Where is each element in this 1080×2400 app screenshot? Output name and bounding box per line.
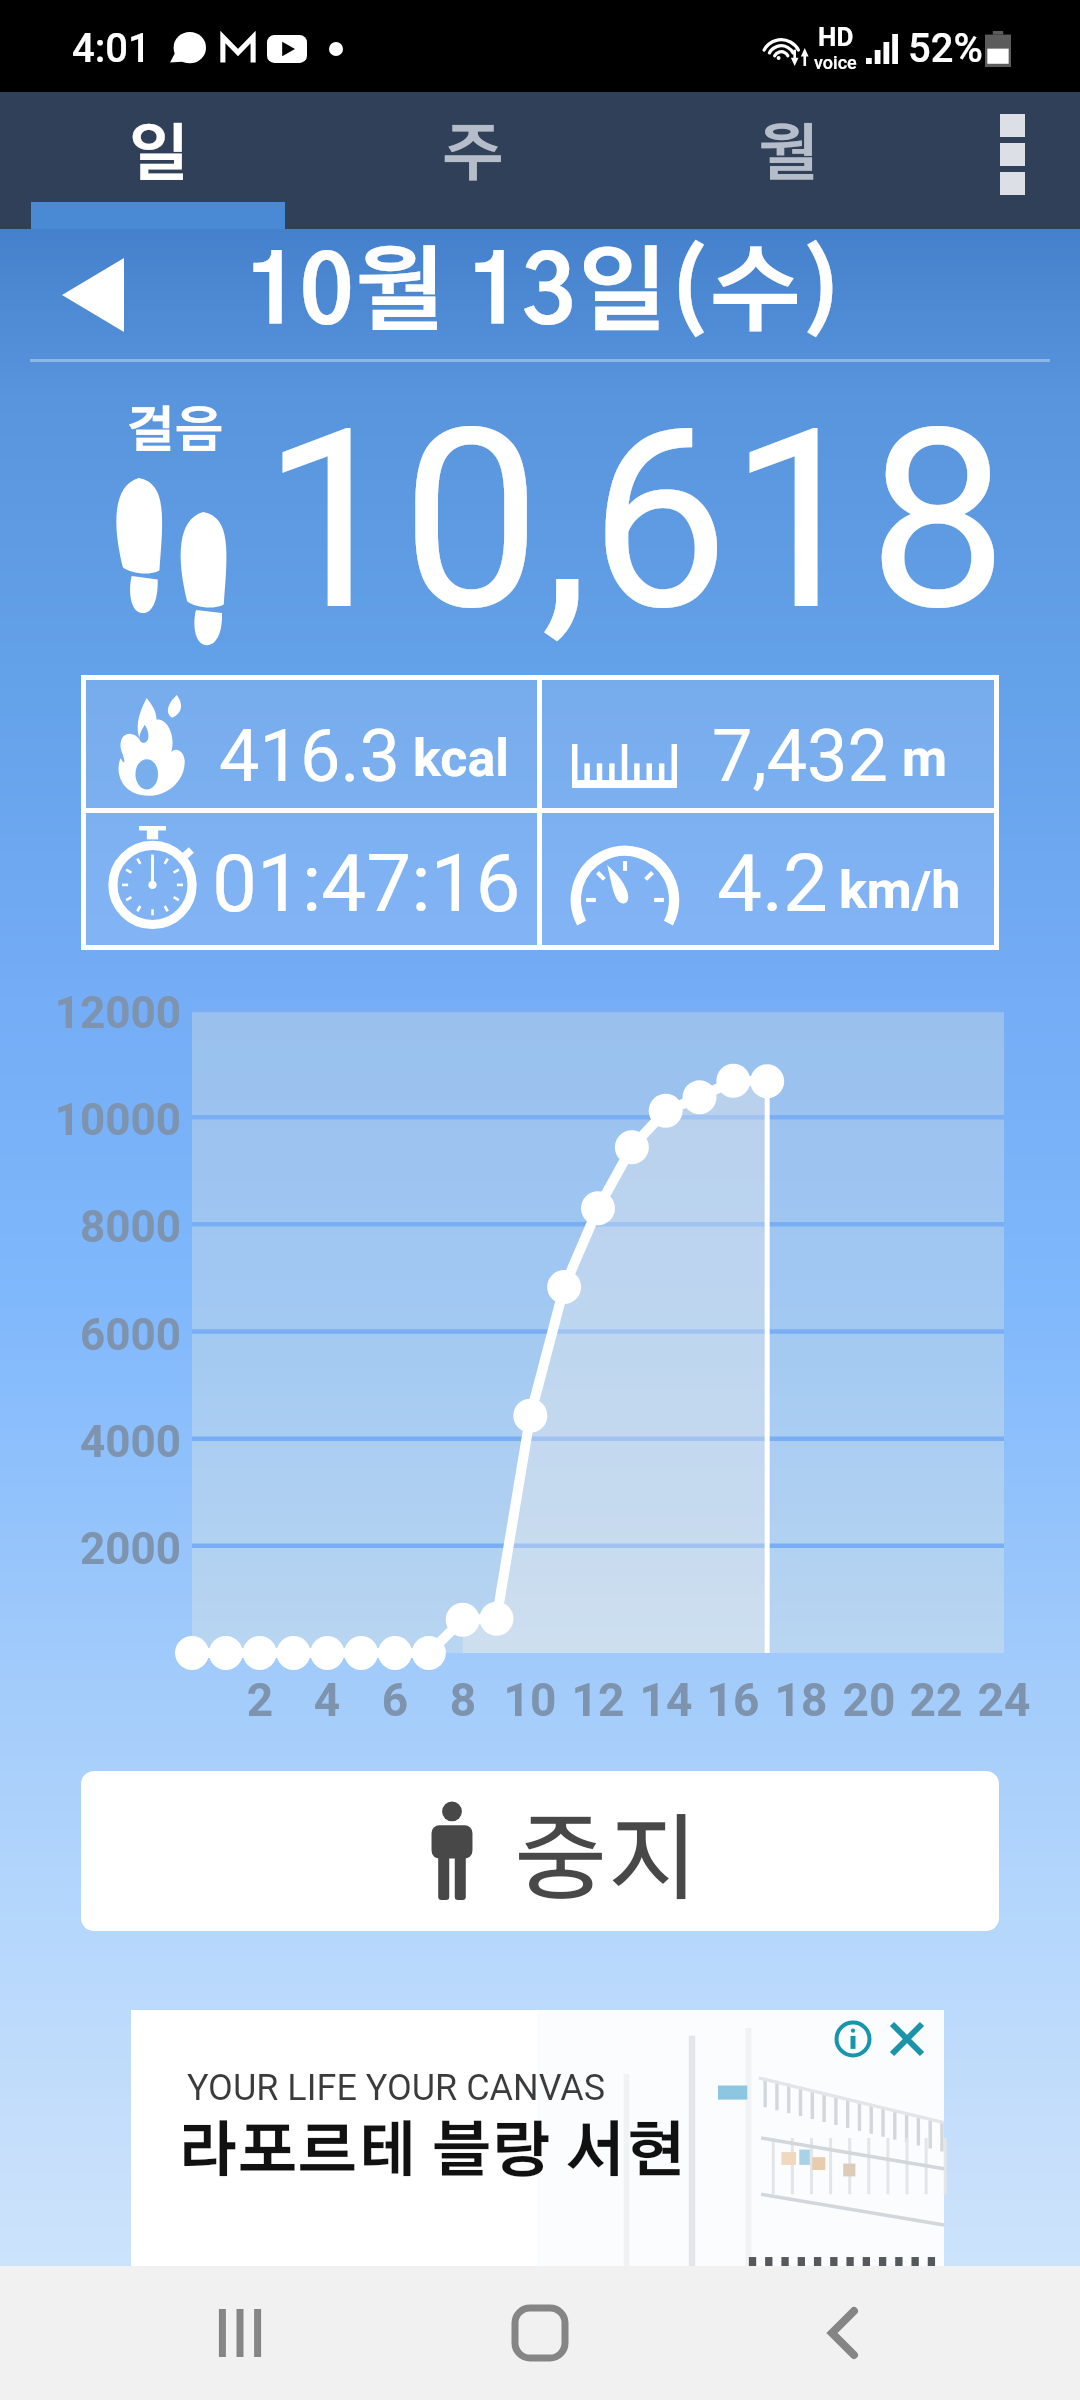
staticText: 12000 [0, 987, 181, 1039]
staticText: YOUR LIFE YOUR CANVAS [187, 2067, 606, 2109]
button[interactable]: 7,432 [542, 680, 994, 808]
staticText: 일 [127, 126, 189, 188]
staticText: 18 [761, 1673, 841, 1727]
staticText: 4000 [0, 1416, 181, 1468]
staticText: 걸음 [126, 408, 224, 457]
button[interactable]: More options [945, 92, 1080, 229]
staticText: 22 [896, 1673, 976, 1727]
staticText: km/h [839, 860, 961, 921]
button[interactable]: Close ad [888, 2020, 926, 2058]
staticText: 416.3 [219, 714, 400, 798]
staticText: 10월 13일(수) [5, 250, 1080, 342]
button[interactable]: Home [450, 2266, 630, 2400]
staticText: 8000 [0, 1201, 181, 1253]
staticText: 2 [220, 1673, 300, 1727]
staticText: m [902, 728, 948, 789]
button[interactable]: 중지 [81, 1771, 999, 1931]
button[interactable]: 주 [315, 92, 630, 229]
staticText: 라포르테 블랑 서현 [178, 2123, 686, 2183]
staticText: 16 [693, 1673, 773, 1727]
staticText: 월 [757, 126, 819, 188]
staticText: 4.2 [717, 837, 829, 931]
staticText: 14 [626, 1673, 706, 1727]
staticText: 7,432 [712, 714, 889, 798]
staticText: 20 [829, 1673, 909, 1727]
staticText: 주 [442, 126, 504, 188]
staticText: 10 [490, 1673, 570, 1727]
button[interactable]: YOUR LIFE YOUR CANVAS [131, 2010, 944, 2266]
button[interactable]: Ad info [834, 2020, 872, 2058]
staticText: 2000 [0, 1523, 181, 1575]
staticText: 12 [558, 1673, 638, 1727]
staticText: 01:47:16 [212, 837, 521, 931]
staticText: 8 [423, 1673, 503, 1727]
button[interactable]: 01:47:16 [81, 813, 532, 941]
button[interactable]: 4.2 [542, 813, 994, 941]
staticText: 24 [964, 1673, 1044, 1727]
button[interactable]: 일 [0, 92, 315, 229]
button[interactable]: Back [753, 2266, 933, 2400]
staticText: 6000 [0, 1309, 181, 1361]
staticText: 4:01 [72, 25, 151, 72]
button[interactable]: 월 [630, 92, 945, 229]
staticText: 52% [908, 25, 983, 72]
staticText: voice [814, 52, 857, 73]
button[interactable]: Previous day [62, 258, 124, 332]
staticText: HD [818, 22, 854, 52]
staticText: 6 [355, 1673, 435, 1727]
staticText: kcal [413, 728, 510, 789]
staticText: 10,618 [262, 376, 1008, 667]
staticText: 4 [287, 1673, 367, 1727]
staticText: 10000 [0, 1094, 181, 1146]
button[interactable]: Recents [150, 2266, 330, 2400]
button[interactable]: 416.3 [81, 680, 532, 808]
staticText: 중지 [515, 1816, 698, 1910]
